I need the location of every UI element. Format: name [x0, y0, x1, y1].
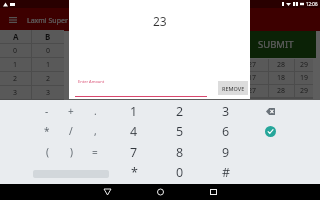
button[interactable]: 1: [112, 101, 156, 121]
staticText: 6: [222, 123, 230, 140]
staticText: 17: [248, 73, 257, 83]
button[interactable]: Done: [253, 121, 287, 141]
button[interactable]: 6: [204, 121, 248, 141]
staticText: Enter Amount: [78, 79, 105, 84]
button[interactable]: ,: [83, 121, 107, 141]
button[interactable]: 7: [112, 142, 156, 162]
staticText: 2: [46, 74, 51, 84]
staticText: 28: [277, 60, 286, 70]
staticText: =: [92, 145, 98, 159]
staticText: *: [131, 164, 138, 181]
staticText: 1: [46, 60, 51, 70]
button[interactable]: *: [35, 121, 59, 141]
staticText: 0: [46, 46, 51, 56]
staticText: 8: [176, 144, 184, 161]
staticText: 27: [248, 60, 257, 70]
staticText: A: [13, 31, 19, 42]
staticText: 3: [13, 88, 18, 98]
button[interactable]: 9: [204, 142, 248, 162]
staticText: 4: [130, 123, 138, 140]
button[interactable]: #: [204, 162, 248, 182]
button[interactable]: *: [112, 162, 156, 182]
button[interactable]: +: [59, 101, 83, 121]
button[interactable]: 8: [158, 142, 202, 162]
staticText: 1: [130, 103, 138, 120]
button[interactable]: Backspace: [253, 101, 287, 121]
staticText: .: [94, 104, 97, 118]
staticText: 2: [176, 103, 184, 120]
staticText: 3: [222, 103, 230, 120]
staticText: 23: [153, 13, 167, 29]
button[interactable]: =: [83, 142, 107, 162]
staticText: ): [70, 145, 73, 159]
staticText: 5: [176, 123, 184, 140]
staticText: 27: [248, 86, 257, 96]
button[interactable]: SUBMIT: [236, 31, 316, 58]
staticText: 29: [300, 86, 309, 96]
staticText: 3: [46, 88, 51, 98]
staticText: +: [68, 104, 74, 118]
button[interactable]: REMOVE: [218, 81, 248, 95]
button[interactable]: /: [59, 121, 83, 141]
button[interactable]: 3: [204, 101, 248, 121]
staticText: 0: [176, 164, 184, 181]
staticText: 2: [13, 74, 18, 84]
staticText: -: [45, 104, 49, 118]
button[interactable]: Home: [151, 184, 169, 200]
button[interactable]: 4: [112, 121, 156, 141]
button[interactable]: Open navigation menu: [4, 11, 21, 28]
staticText: 0: [13, 46, 18, 56]
staticText: SUBMIT: [258, 38, 294, 51]
staticText: ,: [94, 124, 97, 138]
button[interactable]: ): [59, 142, 83, 162]
staticText: (: [46, 145, 49, 159]
staticText: #: [222, 164, 231, 181]
staticText: 18: [277, 73, 286, 83]
staticText: Laxmi Super Market: [27, 16, 93, 26]
staticText: 7: [130, 144, 138, 161]
button[interactable]: 5: [158, 121, 202, 141]
staticText: 12:06: [306, 1, 318, 7]
staticText: B: [45, 31, 51, 42]
button[interactable]: 2: [158, 101, 202, 121]
button[interactable]: Recent apps: [204, 184, 222, 200]
staticText: /: [69, 124, 73, 138]
staticText: REMOVE: [222, 85, 245, 92]
button[interactable]: 0: [158, 162, 202, 182]
staticText: 9: [222, 144, 230, 161]
button[interactable]: -: [35, 101, 59, 121]
button[interactable]: Back: [98, 184, 116, 200]
button[interactable]: (: [35, 142, 59, 162]
staticText: 28: [277, 86, 286, 96]
staticText: 29: [300, 60, 309, 70]
button[interactable]: .: [83, 101, 107, 121]
staticText: 1: [13, 60, 18, 70]
staticText: 19: [300, 73, 309, 83]
staticText: *: [44, 124, 50, 138]
